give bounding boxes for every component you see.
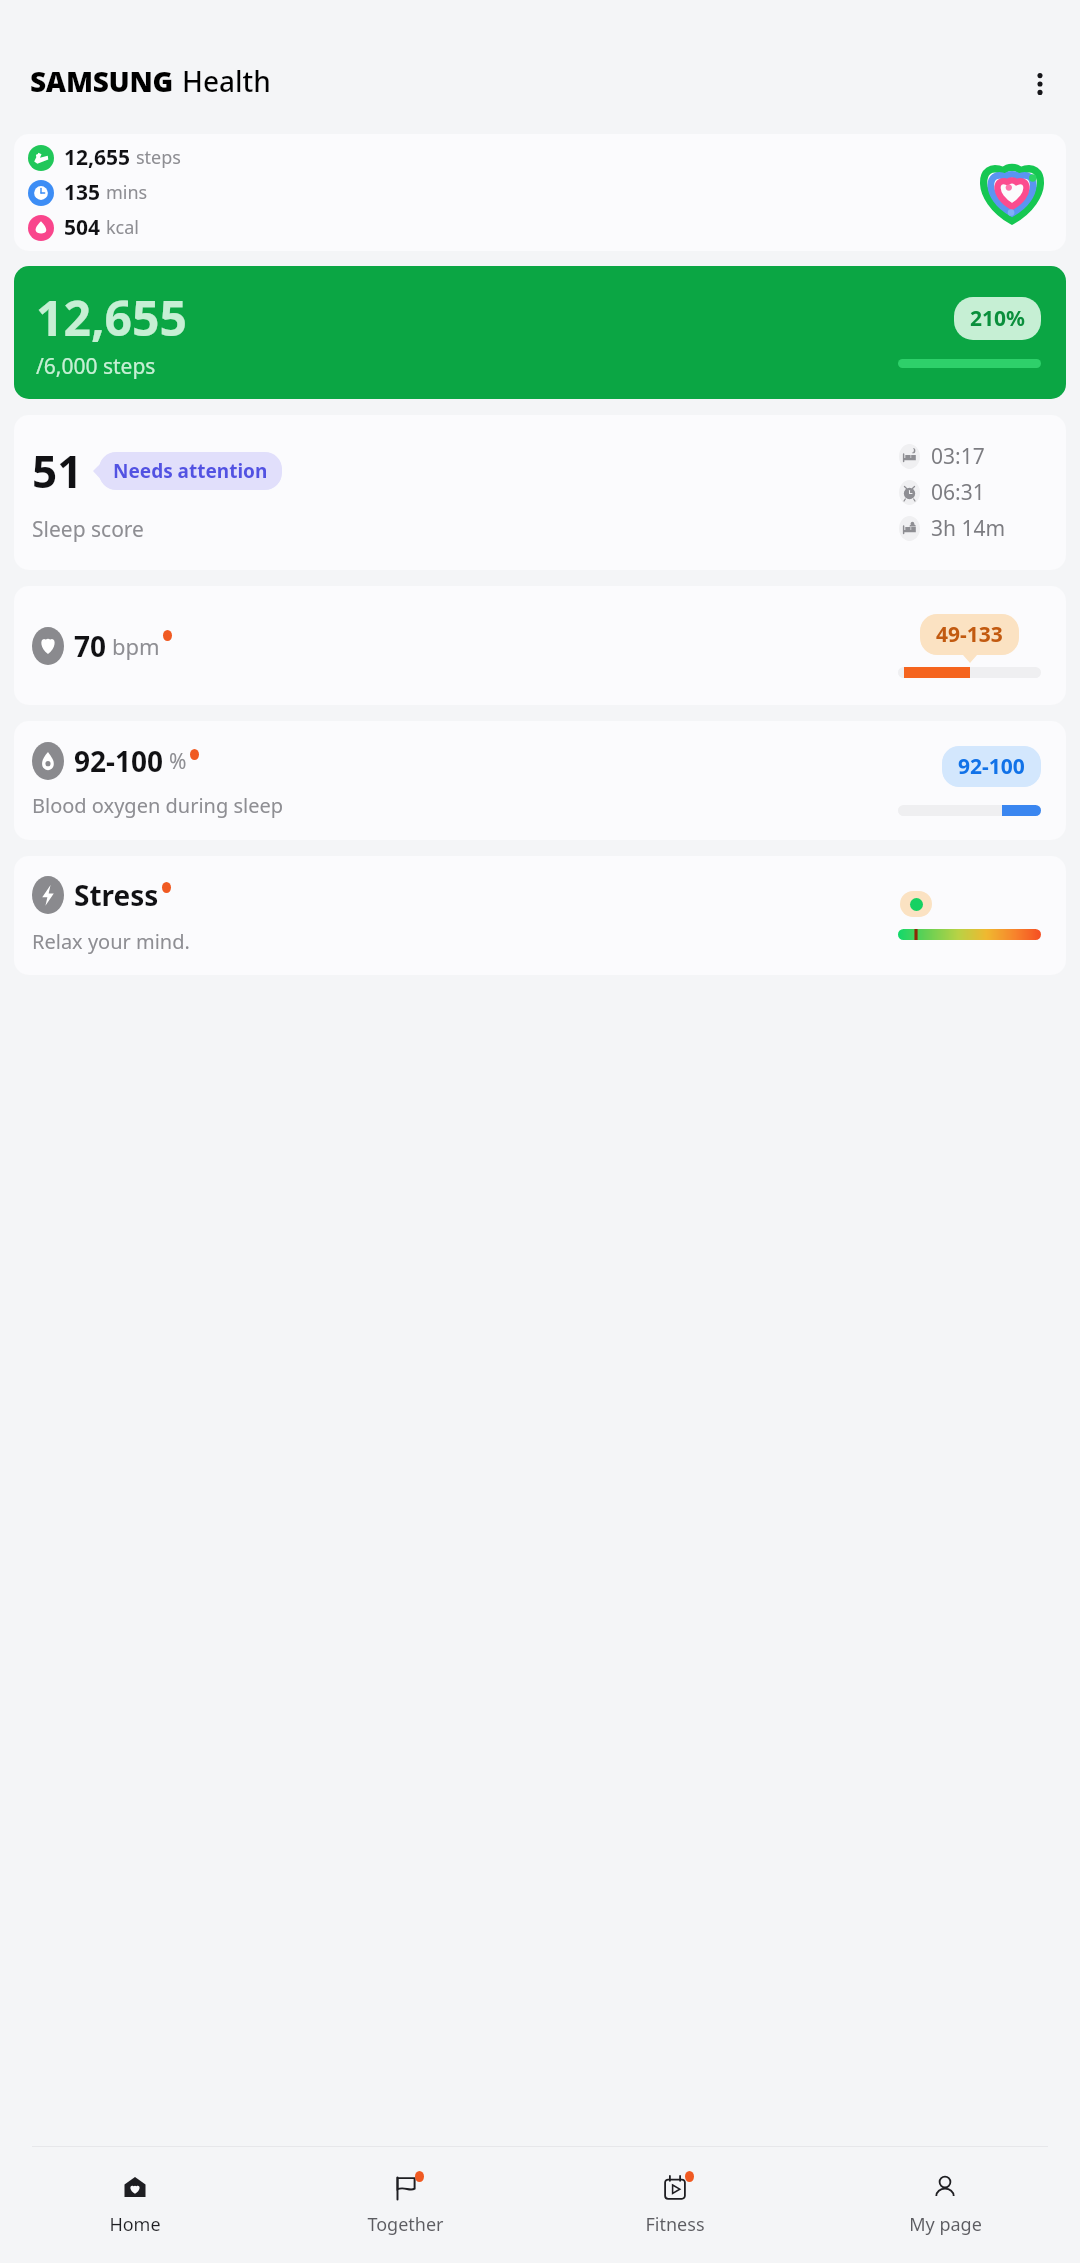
staticText: 92-100 (74, 742, 164, 780)
button[interactable]: Together (270, 2147, 540, 2263)
staticText: 49-133 (936, 620, 1003, 649)
staticText: Home (109, 2212, 161, 2237)
staticText: 135 (64, 178, 101, 207)
staticText: 70 (74, 627, 107, 665)
staticText: 12,655 (64, 143, 131, 172)
button[interactable]: Stress (14, 856, 1066, 975)
staticText: 12,655 (36, 285, 187, 350)
button[interactable]: More options (1014, 58, 1066, 110)
button[interactable]: Fitness (540, 2147, 810, 2263)
staticText: 06:31 (931, 478, 985, 507)
staticText: My page (909, 2212, 982, 2237)
staticText: % (169, 747, 187, 776)
staticText: SAMSUNG (30, 62, 173, 100)
button[interactable]: 12,655 (14, 134, 1066, 251)
staticText: 51 (32, 441, 83, 501)
button[interactable]: Home (0, 2147, 270, 2263)
staticText: Stress (74, 876, 159, 914)
button[interactable]: 70 (14, 586, 1066, 705)
staticText: Together (367, 2212, 444, 2237)
staticText: mins (106, 180, 148, 205)
button[interactable]: 51 (14, 415, 1066, 570)
button[interactable]: 12,655 (14, 266, 1066, 399)
staticText: Fitness (645, 2212, 705, 2237)
staticText: Blood oxygen during sleep (32, 792, 284, 819)
staticText: 03:17 (931, 442, 985, 471)
staticText: Health (182, 62, 271, 100)
staticText: steps (136, 145, 181, 170)
staticText: bpm (112, 631, 160, 661)
staticText: Relax your mind. (32, 928, 190, 955)
staticText: 3h 14m (931, 514, 1006, 543)
staticText: 504 (64, 213, 101, 242)
staticText: 210% (970, 304, 1025, 333)
staticText: 92-100 (958, 752, 1025, 781)
staticText: kcal (106, 215, 139, 240)
staticText: Needs attention (113, 458, 268, 484)
button[interactable]: 92-100 (14, 721, 1066, 840)
button[interactable]: My page (810, 2147, 1080, 2263)
staticText: /6,000 steps (36, 352, 156, 381)
staticText: Sleep score (32, 515, 144, 544)
